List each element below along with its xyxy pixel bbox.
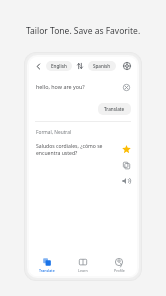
button[interactable]: Spanish — [88, 61, 116, 71]
staticText: hello, how are you? — [36, 83, 85, 90]
staticText: Translate — [39, 268, 55, 273]
button[interactable]: Save as favorite — [120, 143, 132, 155]
button[interactable]: Translate — [98, 103, 131, 115]
staticText: Spanish — [93, 63, 111, 69]
button[interactable]: Translate — [29, 254, 65, 276]
staticText: Learn — [78, 268, 88, 273]
button[interactable]: English — [46, 61, 72, 71]
staticText: Saludos cordiales, ¿cómo se encuentra us… — [36, 143, 116, 157]
staticText: Tailor Tone. Save as Favorite. — [26, 25, 141, 37]
button[interactable]: Profile — [101, 254, 137, 276]
button[interactable]: Settings — [121, 60, 133, 72]
staticText: Profile — [114, 268, 125, 273]
staticText: Formal, Neutral — [36, 129, 72, 136]
button[interactable]: Listen to translation — [120, 175, 132, 187]
button[interactable]: Back — [33, 61, 44, 72]
staticText: English — [51, 63, 67, 69]
button[interactable]: Copy translation — [120, 159, 132, 171]
button[interactable]: Swap languages — [75, 61, 85, 71]
button[interactable]: Clear text — [122, 83, 131, 92]
button[interactable]: Learn — [65, 254, 101, 276]
staticText: Translate — [104, 106, 125, 112]
